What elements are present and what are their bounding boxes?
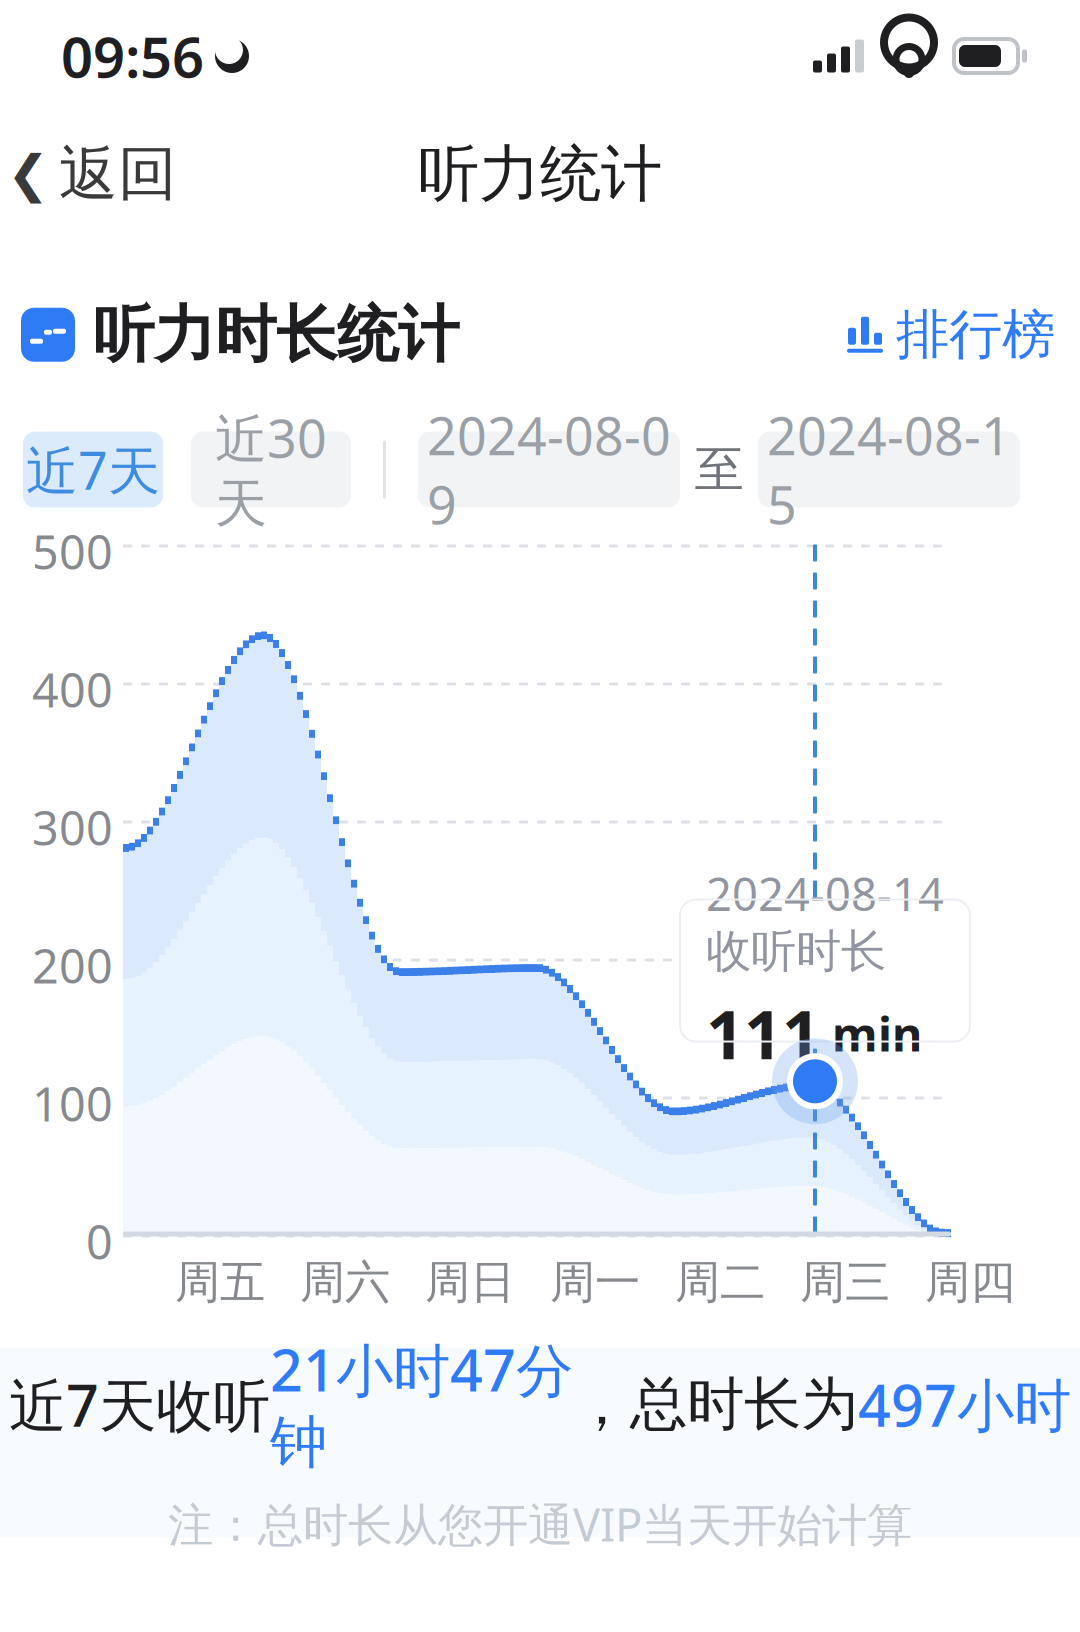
staticText: 300 [32,796,113,858]
staticText: 近7天 [26,435,160,504]
staticText: 2024-08-09 [427,400,671,539]
staticText: 周六 [300,1255,390,1310]
staticText: ，总时长为 [573,1369,858,1440]
staticText: 周日 [425,1255,515,1310]
staticText: 周五 [175,1255,265,1310]
staticText: 近7天收听 [9,1366,270,1442]
staticText: 排行榜 [896,302,1055,367]
staticText: 500 [32,520,113,582]
staticText: 400 [32,658,113,720]
staticText: 返回 [59,138,177,210]
button[interactable]: 排行榜 [840,292,1061,377]
staticText: 0 [86,1210,113,1272]
button[interactable]: 近7天 [23,431,163,507]
staticText: 111 [706,989,820,1078]
staticText: 09:56 [61,19,204,93]
button[interactable]: 2024-08-09 [418,431,680,507]
staticText: 周二 [675,1255,765,1310]
staticText: 21小时47分钟 [270,1331,573,1478]
staticText: 周四 [925,1255,1015,1310]
staticText: 2024-08-14收听时长 [706,863,944,979]
staticText: 注：总时长从您开通VIP当天开始计算 [168,1494,912,1554]
staticText: 200 [32,934,113,996]
staticText: ❮ [7,145,49,203]
staticText: 497小时 [858,1366,1071,1442]
staticText: min [832,1002,922,1064]
staticText: 至 [694,439,743,500]
staticText: 100 [32,1072,113,1134]
staticText: 2024-08-15 [767,400,1011,539]
staticText: 周一 [550,1255,640,1310]
staticText: 听力统计 [418,136,662,212]
staticText: 周三 [800,1255,890,1310]
button[interactable]: ❮ [0,124,177,224]
button[interactable]: 2024-08-15 [758,431,1020,507]
staticText: 近30天 [215,403,327,536]
button[interactable]: 近30天 [191,431,351,507]
staticText: 听力时长统计 [93,297,459,372]
